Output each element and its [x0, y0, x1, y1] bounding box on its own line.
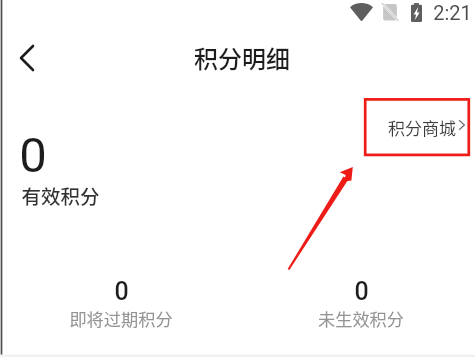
button[interactable]: 积分商城 — [384, 112, 468, 138]
button[interactable]: 0 — [14, 124, 114, 210]
staticText: 未生效积分 — [318, 306, 404, 331]
button[interactable]: Back — [9, 37, 45, 79]
staticText: 0 — [354, 277, 369, 306]
staticText: 0 — [114, 277, 129, 306]
button[interactable]: 0 — [61, 277, 181, 331]
staticText: 有效积分 — [21, 181, 100, 209]
staticText: 0 — [19, 127, 47, 184]
staticText: 积分明细 — [194, 40, 290, 75]
staticText: 积分商城 — [388, 115, 456, 140]
staticText: 即将过期积分 — [69, 306, 173, 331]
staticText: 2:21 — [433, 1, 472, 24]
button[interactable]: 0 — [301, 277, 421, 331]
